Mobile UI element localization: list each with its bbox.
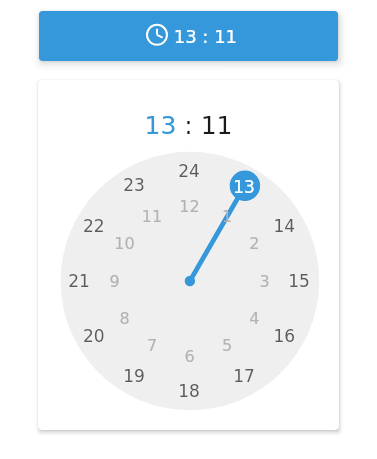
button[interactable]: 6 — [172, 338, 206, 372]
button[interactable]: 2 — [237, 226, 271, 260]
button[interactable]: 14 — [267, 208, 301, 242]
button[interactable]: 12 — [172, 188, 206, 222]
staticText: 10 — [114, 234, 135, 253]
staticText: 17 — [233, 366, 255, 386]
staticText: 23 — [123, 175, 145, 195]
staticText: 13 — [233, 176, 255, 196]
staticText: 22 — [83, 215, 105, 235]
staticText: 9 — [109, 271, 120, 290]
staticText: 20 — [83, 325, 105, 345]
button[interactable]: 10 — [107, 226, 141, 260]
staticText: 6 — [184, 346, 195, 365]
staticText: 13 : 11 — [144, 111, 232, 140]
staticText: 18 — [178, 380, 200, 400]
button[interactable]: 7 — [134, 328, 168, 362]
button[interactable]: 3 — [247, 263, 281, 297]
button[interactable]: 24 — [172, 153, 206, 187]
staticText: 7 — [146, 336, 157, 355]
staticText: 16 — [273, 325, 295, 345]
button[interactable]: 13 — [227, 169, 261, 203]
staticText: 1 — [221, 206, 232, 225]
button[interactable]: 16 — [267, 318, 301, 352]
button[interactable]: 21 — [62, 263, 96, 297]
staticText: 13 : 11 — [168, 26, 238, 47]
button[interactable]: 9 — [97, 263, 131, 297]
staticText: 15 — [288, 270, 310, 290]
staticText: 2 — [249, 234, 260, 253]
staticText: 8 — [119, 309, 130, 328]
staticText: 12 — [179, 196, 200, 215]
button[interactable]: 11 — [134, 198, 168, 232]
staticText: 19 — [123, 366, 145, 386]
button[interactable]: 15 — [282, 263, 316, 297]
button[interactable]: 23 — [117, 168, 151, 202]
button[interactable]: 8 — [107, 301, 141, 335]
button[interactable]: 18 — [172, 373, 206, 407]
button[interactable]: 4 — [237, 301, 271, 335]
button[interactable]: 5 — [209, 328, 243, 362]
staticText: 3 — [259, 271, 270, 290]
button[interactable]: 17 — [227, 359, 261, 393]
button[interactable]: 22 — [77, 208, 111, 242]
button[interactable]: Clock — [39, 11, 338, 61]
other: Clock — [146, 24, 168, 46]
staticText: 5 — [221, 336, 232, 355]
button[interactable]: 20 — [77, 318, 111, 352]
staticText: 21 — [68, 270, 90, 290]
button[interactable]: 1 — [209, 198, 243, 232]
staticText: 4 — [249, 309, 260, 328]
staticText: 11 — [141, 206, 162, 225]
staticText: 14 — [273, 215, 295, 235]
button[interactable]: 19 — [117, 359, 151, 393]
staticText: 24 — [178, 160, 200, 180]
